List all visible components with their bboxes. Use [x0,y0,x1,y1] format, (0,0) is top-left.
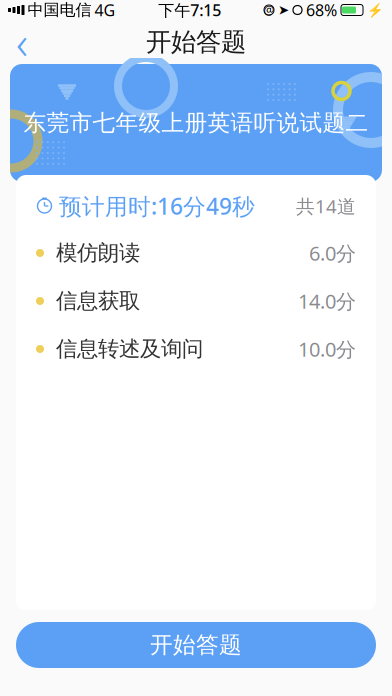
staticText: 中国电信 [27,0,91,20]
button[interactable]: 开始答题 [16,622,376,668]
button[interactable]: Back [0,20,44,64]
staticText: 模仿朗读 [56,240,140,266]
staticText: 14.0分 [298,288,356,314]
staticText: 68% [306,0,337,21]
staticText: 东莞市七年级上册英语听说试题二 [23,109,368,137]
staticText: 下午7:15 [158,0,221,21]
staticText: ⚡ [367,2,384,18]
staticText: @ [263,2,274,18]
staticText: ‹ [16,12,28,72]
staticText: 信息转述及询问 [56,336,203,362]
staticText: 共14道 [296,194,356,218]
staticText: 预计用时:16分49秒 [59,191,255,221]
staticText: 6.0分 [309,240,356,266]
staticText: ➤ [278,2,289,17]
staticText: 开始答题 [150,631,242,659]
staticText: 开始答题 [146,26,246,57]
staticText: 10.0分 [298,336,356,362]
staticText: 4G [94,0,115,21]
staticText: 信息获取 [56,288,140,314]
